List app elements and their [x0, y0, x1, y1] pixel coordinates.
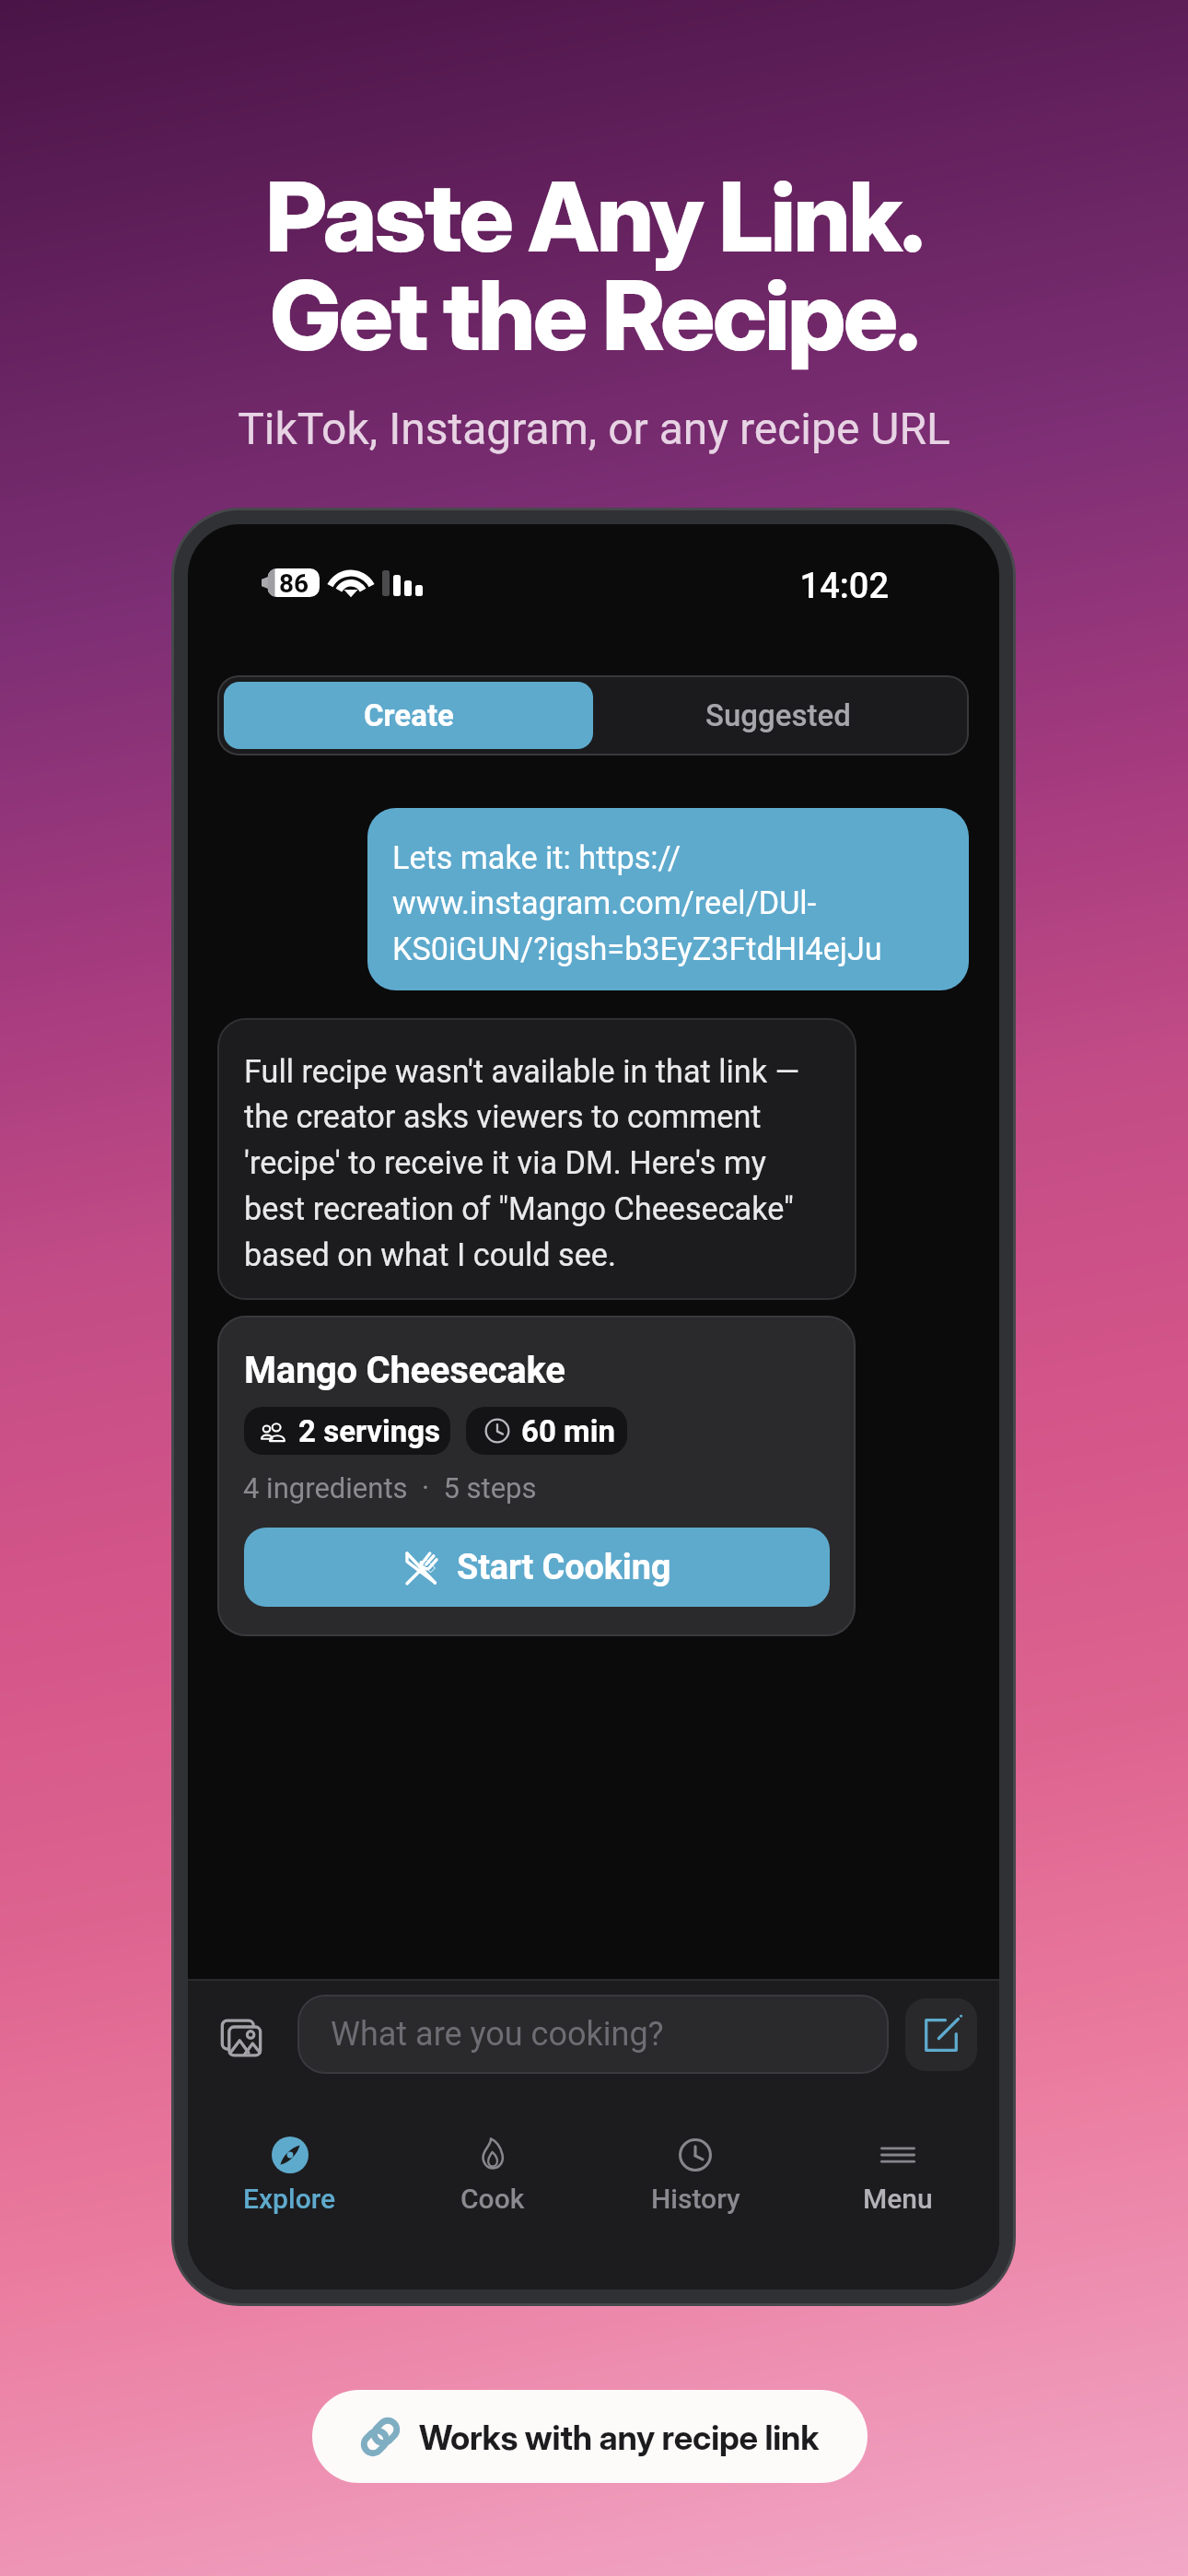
button[interactable]: Cook	[391, 2098, 594, 2289]
staticText: History	[651, 2183, 740, 2215]
staticText: Menu	[863, 2183, 933, 2215]
staticText: Lets make it: https://www.instagram.com/…	[392, 839, 945, 968]
button[interactable]: Create	[224, 682, 593, 749]
staticText: Mango Cheesecake	[244, 1349, 565, 1392]
staticText: 4 ingredients · 5 steps	[243, 1471, 537, 1505]
staticText: 86	[279, 568, 309, 597]
button[interactable]: Start Cooking	[244, 1528, 830, 1607]
button[interactable]: Suggested	[593, 682, 962, 749]
button[interactable]: Add photo	[210, 2003, 273, 2073]
staticText: Cook	[460, 2183, 525, 2215]
button[interactable]: What are you cooking?	[297, 1995, 889, 2074]
staticText: 14:02	[648, 566, 889, 607]
staticText: 60 min	[521, 1413, 615, 1449]
staticText: Works with any recipe link	[419, 2418, 820, 2458]
staticText: TikTok, Instagram, or any recipe URL	[0, 403, 1188, 454]
staticText: Start Cooking	[457, 1547, 671, 1588]
staticText: Explore	[243, 2183, 336, 2215]
button[interactable]: Explore	[188, 2098, 391, 2289]
button[interactable]: New chat	[905, 1998, 977, 2071]
button[interactable]: Works with any recipe link	[312, 2390, 868, 2483]
staticText: Full recipe wasn't available in that lin…	[244, 1053, 812, 1274]
button[interactable]: Menu	[797, 2098, 999, 2289]
staticText: Suggested	[705, 697, 851, 733]
staticText: Create	[364, 697, 454, 733]
button[interactable]: History	[594, 2098, 797, 2289]
staticText: What are you cooking?	[331, 2015, 664, 2054]
staticText: 2 servings	[298, 1413, 441, 1449]
staticText: Paste Any Link. Get the Recipe.	[0, 158, 1188, 374]
